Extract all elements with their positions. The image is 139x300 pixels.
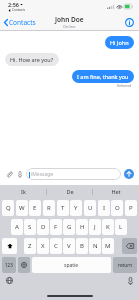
staticText: F	[54, 223, 58, 231]
staticText: D	[41, 223, 46, 231]
button[interactable]: I	[98, 200, 110, 216]
staticText: H	[80, 223, 85, 231]
staticText: K	[106, 223, 110, 231]
button[interactable]: E	[29, 200, 41, 216]
staticText: O	[115, 204, 120, 212]
staticText: S	[28, 223, 32, 231]
button[interactable]: iMessage	[26, 168, 121, 180]
button[interactable]: K	[102, 219, 114, 235]
staticText: Contacts	[9, 18, 36, 27]
button[interactable]: C	[50, 238, 62, 254]
button[interactable]: Backspace	[122, 238, 137, 254]
button[interactable]: X	[37, 238, 49, 254]
button[interactable]: Het	[93, 185, 139, 198]
staticText: W	[19, 204, 25, 212]
button[interactable]: B	[76, 238, 88, 254]
staticText: Ik	[21, 188, 26, 195]
button[interactable]: Change keyboard language	[6, 277, 13, 284]
button[interactable]: Send	[123, 168, 135, 180]
staticText: N	[93, 242, 98, 250]
staticText: Het	[111, 188, 121, 195]
staticText: 123	[5, 262, 13, 268]
button[interactable]: U	[84, 200, 96, 216]
button[interactable]: H	[76, 219, 88, 235]
button[interactable]: Emoji	[18, 257, 30, 273]
staticText: 2:56	[8, 1, 19, 8]
staticText: U	[88, 204, 93, 212]
button[interactable]: W	[16, 200, 28, 216]
button[interactable]: R	[43, 200, 55, 216]
staticText: P	[129, 204, 133, 212]
staticText: L	[119, 223, 123, 231]
button[interactable]: T	[57, 200, 69, 216]
button[interactable]: P	[125, 200, 137, 216]
staticText: I am fine, thank you	[77, 73, 129, 80]
button[interactable]: F	[50, 219, 62, 235]
button[interactable]: Ik	[0, 185, 47, 198]
staticText: spatie	[64, 262, 79, 269]
staticText: Contacts	[12, 8, 26, 12]
staticText: T	[61, 204, 65, 212]
button[interactable]: V	[63, 238, 75, 254]
staticText: J	[94, 223, 96, 231]
staticText: V	[67, 242, 71, 250]
button[interactable]: Hi. How are you?	[5, 53, 59, 66]
staticText: Q	[6, 204, 11, 212]
staticText: G	[67, 223, 72, 231]
button[interactable]: Y	[70, 200, 82, 216]
staticText: iMessage	[31, 171, 54, 178]
button[interactable]: Dictate	[128, 277, 133, 285]
button[interactable]: S	[24, 219, 36, 235]
staticText: I	[103, 204, 106, 212]
staticText: E	[33, 204, 37, 212]
staticText: Delivered	[117, 84, 132, 88]
button[interactable]: Record audio	[16, 169, 24, 180]
staticText: X	[41, 242, 45, 250]
button[interactable]: return	[113, 257, 137, 273]
staticText: De	[66, 188, 74, 195]
button[interactable]: Contact info	[125, 18, 139, 27]
staticText: Z	[28, 242, 32, 250]
button[interactable]: G	[63, 219, 75, 235]
button[interactable]: Q	[2, 200, 14, 216]
button[interactable]: Z	[24, 238, 36, 254]
button[interactable]: D	[37, 219, 49, 235]
button[interactable]: A	[11, 219, 23, 235]
button[interactable]: O	[111, 200, 123, 216]
staticText: B	[80, 242, 84, 250]
button[interactable]: N	[89, 238, 101, 254]
staticText: C	[54, 242, 58, 250]
staticText: Hi. How are you?	[10, 56, 54, 63]
button[interactable]: I am fine, thank you	[72, 70, 134, 83]
staticText: R	[47, 204, 51, 212]
button[interactable]: L	[115, 219, 127, 235]
button[interactable]: Hi John	[105, 36, 134, 49]
staticText: John Doe	[55, 15, 84, 24]
button[interactable]: J	[89, 219, 101, 235]
staticText: Hi John	[110, 39, 129, 46]
button[interactable]: 123	[2, 257, 16, 273]
staticText: Online	[63, 24, 76, 29]
staticText: M	[105, 242, 111, 250]
button[interactable]: De	[47, 185, 93, 198]
button[interactable]: Shift	[2, 238, 17, 254]
button[interactable]: Attach file	[4, 169, 15, 180]
staticText: A	[15, 223, 19, 231]
staticText: Y	[74, 204, 78, 212]
button[interactable]: Contacts	[0, 15, 40, 30]
button[interactable]: M	[102, 238, 114, 254]
staticText: return	[118, 262, 133, 269]
button[interactable]: spatie	[32, 257, 111, 273]
